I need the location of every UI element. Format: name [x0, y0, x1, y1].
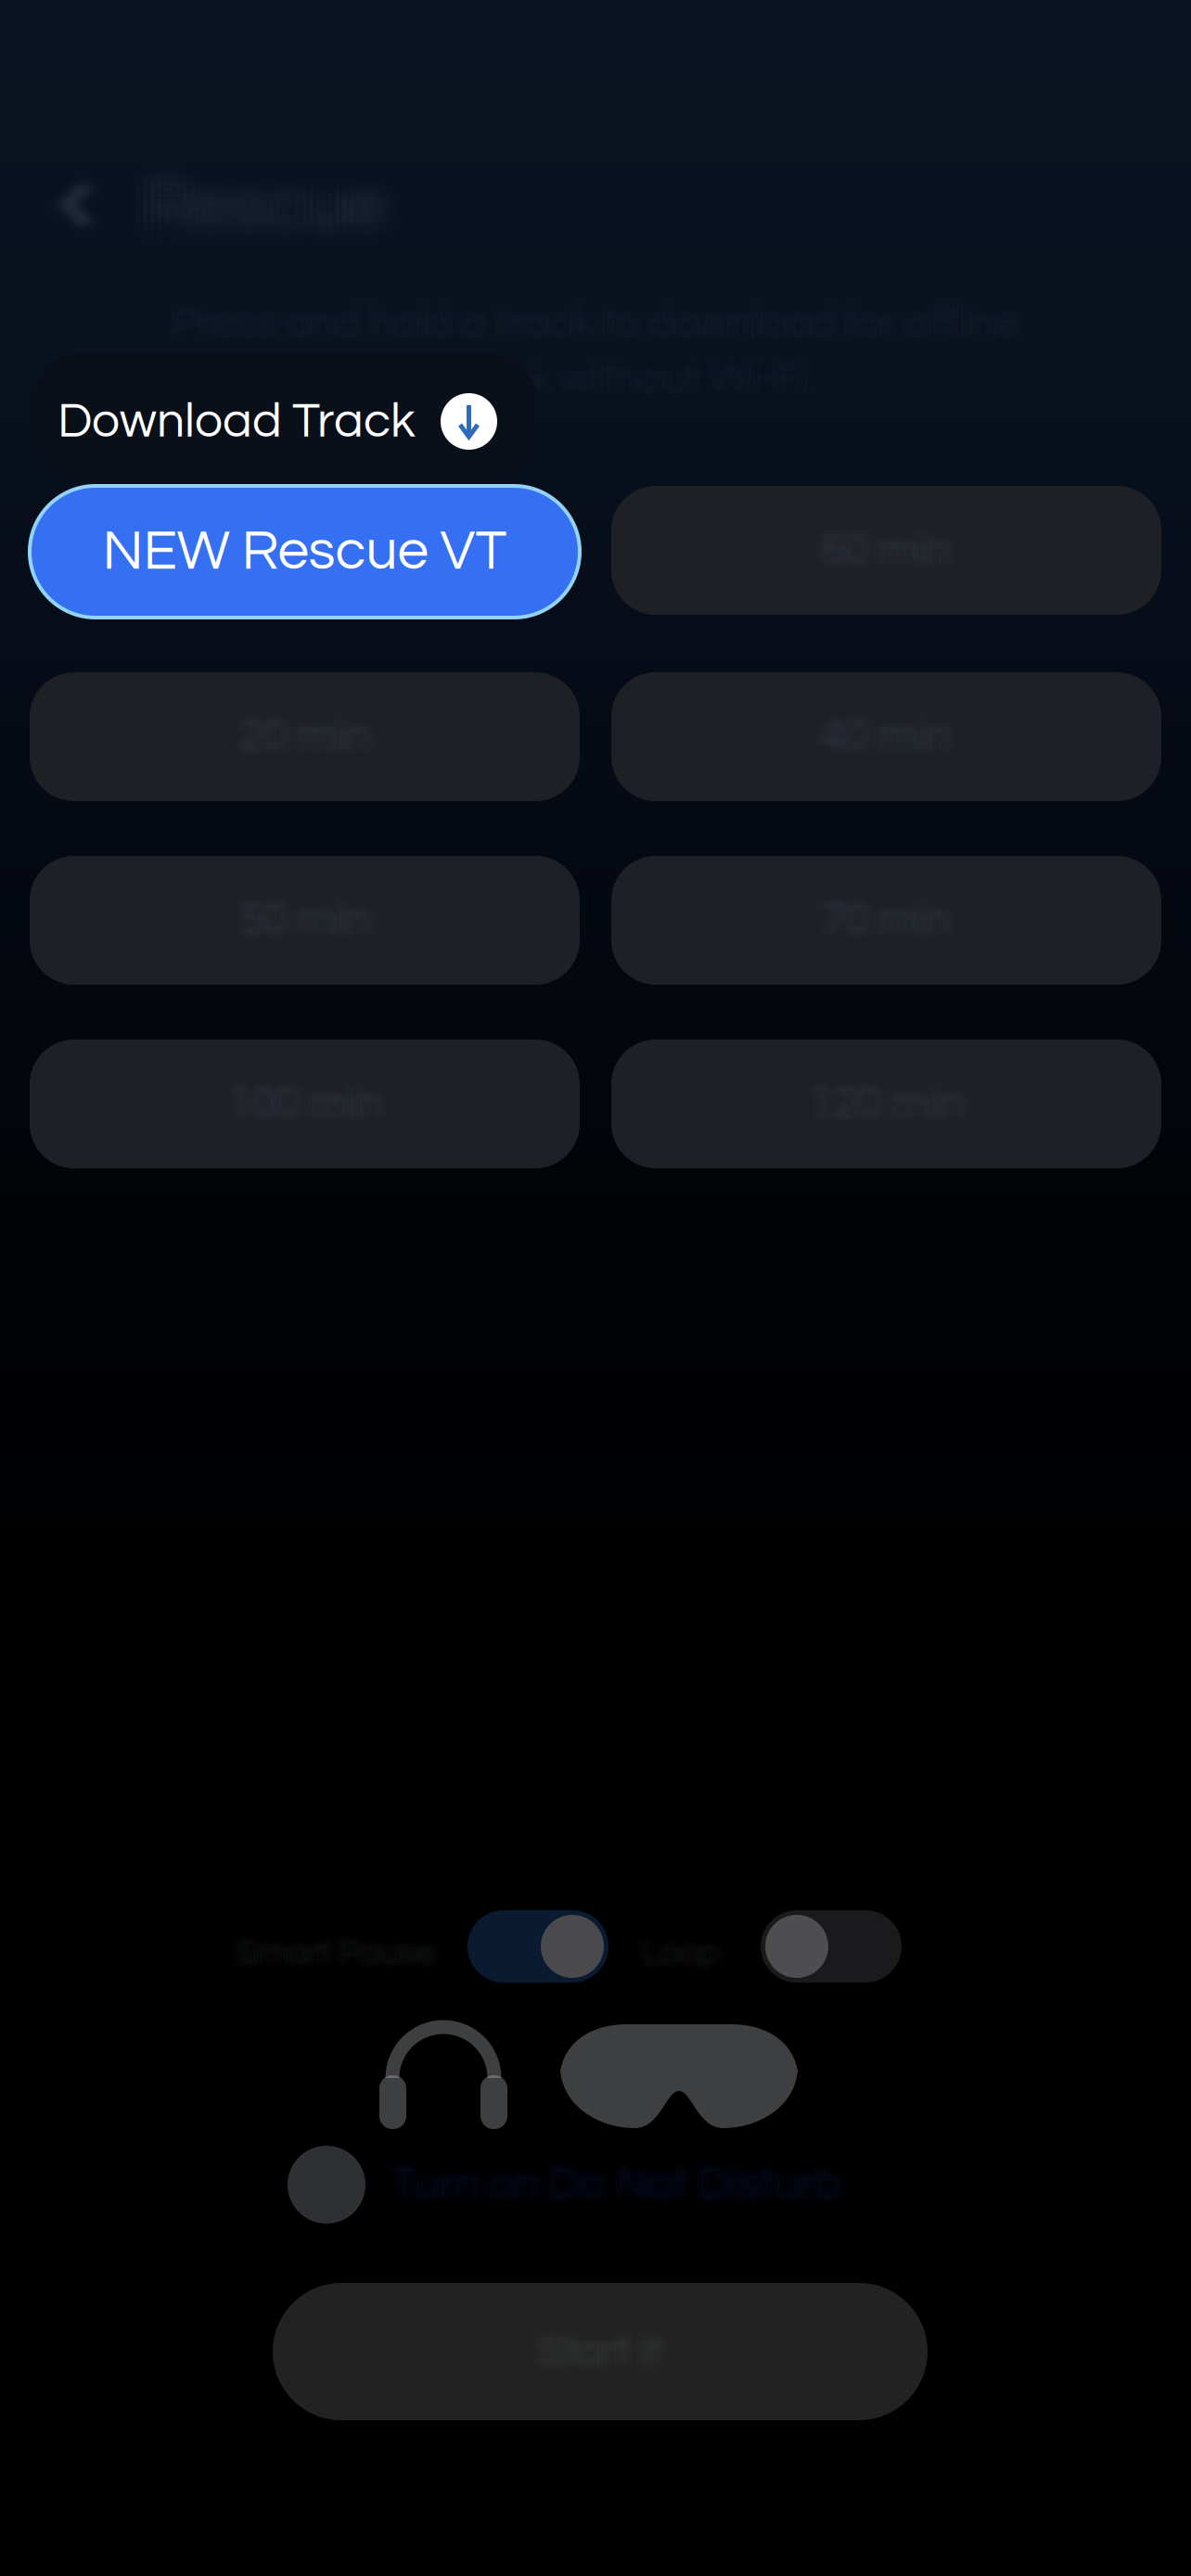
staticText: 60 min	[821, 519, 952, 565]
staticText: Start it	[534, 2336, 659, 2379]
staticText: 70 min	[806, 892, 937, 937]
staticText: 120 min	[809, 1072, 964, 1118]
staticText: Turn on Do Not Disturb	[377, 2170, 827, 2216]
staticText: 70 min	[806, 900, 937, 946]
staticText: 50 min	[232, 900, 363, 946]
staticText: Loop	[629, 1943, 706, 1978]
staticText: Rescue	[165, 158, 406, 232]
staticText: 120 min	[801, 1075, 956, 1121]
staticText: playback without Wi-Fi.	[381, 367, 818, 411]
staticText: Loop	[642, 1938, 719, 1973]
staticText: 60 min	[836, 536, 967, 582]
staticText: Turn on Do Not Disturb	[403, 2153, 853, 2199]
staticText: playback without Wi-Fi.	[381, 361, 818, 404]
staticText: 120 min	[809, 1081, 964, 1127]
staticText: playback without Wi-Fi.	[390, 348, 826, 391]
staticText: Rescue	[144, 180, 385, 254]
staticText: 50 min	[250, 906, 381, 952]
staticText: 40 min	[817, 717, 948, 763]
staticText: Turn on Do Not Disturb	[388, 2162, 839, 2208]
staticText: Start it	[534, 2327, 659, 2370]
staticText: 60 min	[813, 533, 944, 579]
staticText: 20 min	[224, 708, 355, 754]
staticText: Start it	[542, 2339, 666, 2382]
staticText: Smart Pause	[239, 1928, 439, 1963]
staticText: 50 min	[232, 897, 363, 943]
staticText: Turn on Do Not Disturb	[395, 2168, 846, 2213]
staticText: 100 min	[231, 1084, 386, 1130]
staticText: 60 min	[817, 522, 948, 567]
staticText: 50 min	[228, 903, 359, 949]
staticText: 50 min	[247, 900, 378, 946]
staticText: Smart Pause	[246, 1938, 445, 1973]
staticText: 120 min	[809, 1075, 964, 1121]
staticText: 100 min	[216, 1072, 371, 1118]
staticText: 100 min	[235, 1078, 390, 1124]
staticText: 50 min	[239, 889, 370, 935]
staticText: playback without Wi-Fi.	[394, 367, 831, 411]
staticText: Smart Pause	[233, 1930, 432, 1966]
staticText: 70 min	[836, 903, 967, 949]
staticText: 40 min	[832, 708, 963, 754]
staticText: 100 min	[220, 1075, 375, 1121]
staticText: 120 min	[824, 1072, 979, 1118]
staticText: 120 min	[794, 1072, 949, 1118]
staticText: 20 min	[236, 722, 366, 768]
staticText: 60 min	[810, 536, 941, 582]
staticText: 60 min	[813, 522, 944, 567]
staticText: Rescue	[158, 169, 399, 243]
staticText: Start it	[538, 2339, 662, 2382]
staticText: Start it	[531, 2339, 655, 2382]
staticText: 100 min	[227, 1087, 382, 1133]
staticText: Turn on Do Not Disturb	[395, 2156, 846, 2202]
staticText: 60 min	[828, 527, 959, 573]
staticText: 60 min	[832, 530, 963, 576]
staticText: playback without Wi-Fi.	[385, 358, 822, 401]
staticText: 100 min	[235, 1075, 390, 1121]
staticText: 40 min	[825, 714, 955, 760]
staticText: Turn on Do Not Disturb	[391, 2165, 842, 2210]
staticText: Loop	[639, 1928, 716, 1963]
staticText: Rescue	[130, 153, 371, 227]
staticText: 100 min	[212, 1075, 367, 1121]
staticText: Turn on Do Not Disturb	[395, 2170, 846, 2216]
staticText: Smart Pause	[249, 1928, 448, 1963]
staticText: 20 min	[224, 714, 355, 760]
staticText: 60 min	[821, 533, 952, 579]
staticText: playback without Wi-Fi.	[365, 354, 801, 398]
staticText: 120 min	[813, 1084, 967, 1130]
staticText: Turn on Do Not Disturb	[406, 2165, 857, 2210]
staticText: playback without Wi-Fi.	[369, 367, 806, 411]
staticText: Turn on Do Not Disturb	[388, 2156, 839, 2202]
staticText: Start it	[534, 2333, 659, 2376]
staticText: Smart Pause	[233, 1938, 432, 1973]
staticText: Turn on Do Not Disturb	[399, 2162, 850, 2208]
staticText: Rescue	[151, 158, 392, 232]
staticText: Rescue	[144, 169, 385, 243]
